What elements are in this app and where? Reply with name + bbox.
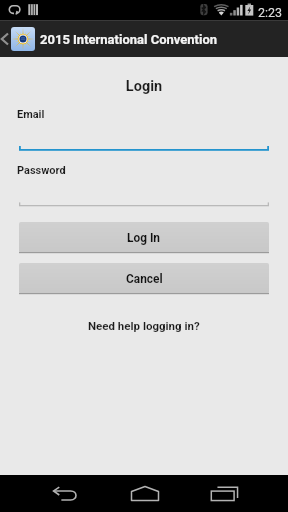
staticText: Cancel (126, 272, 163, 286)
staticText: Login (0, 78, 288, 95)
staticText: Password (17, 164, 66, 177)
button[interactable]: Recent apps (211, 479, 241, 509)
staticText: 2015 International Convention (40, 32, 218, 47)
button[interactable]: Home (130, 479, 160, 509)
button[interactable]: Need help logging in? (0, 319, 288, 332)
staticText: Log In (127, 231, 161, 245)
button[interactable]: Back (52, 479, 78, 509)
staticText: Need help logging in? (88, 319, 200, 332)
button[interactable]: Navigate up (0, 20, 288, 57)
button[interactable]: Cancel (19, 263, 269, 294)
staticText: Email (17, 108, 45, 121)
staticText: 2:23 (258, 5, 283, 20)
button[interactable]: Log In (19, 222, 269, 253)
